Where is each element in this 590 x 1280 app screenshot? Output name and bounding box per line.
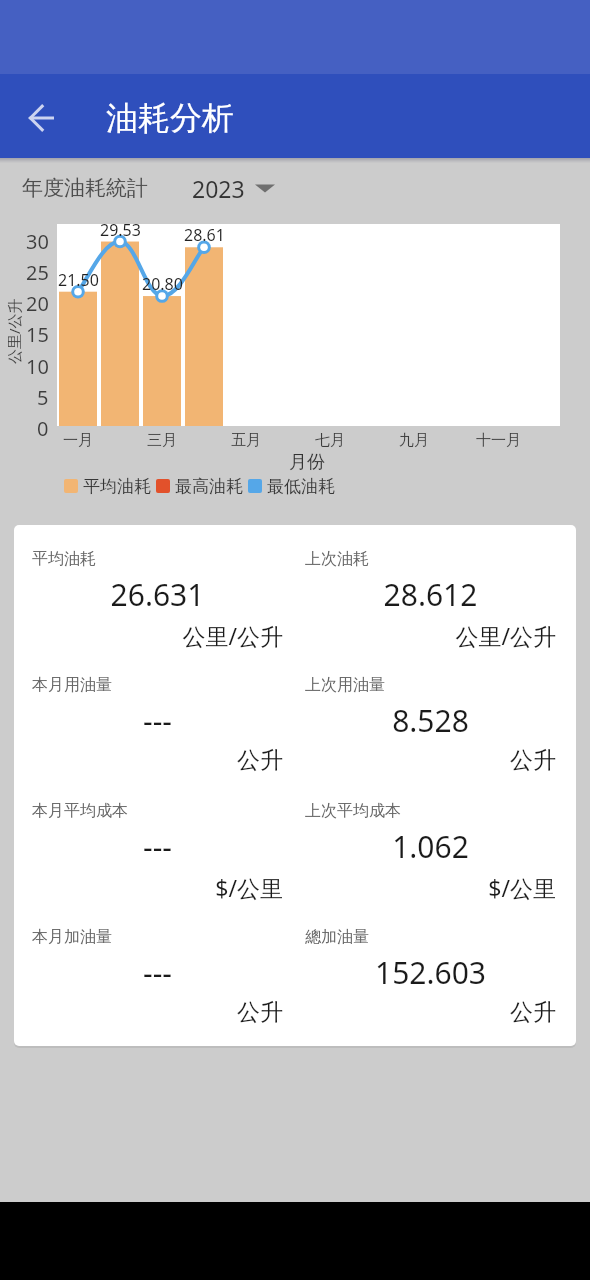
staticText: 15 bbox=[26, 321, 49, 343]
staticText: 最高油耗 bbox=[175, 476, 243, 496]
staticText: 29.53 bbox=[100, 219, 141, 239]
staticText: 五月 bbox=[231, 431, 261, 450]
staticText: 七月 bbox=[315, 431, 345, 450]
staticText: 三月 bbox=[147, 431, 177, 450]
button[interactable] bbox=[18, 92, 66, 140]
staticText: --- bbox=[32, 826, 283, 867]
staticText: 20 bbox=[26, 290, 49, 312]
staticText: 上次用油量 bbox=[305, 675, 385, 695]
staticText: 10 bbox=[26, 353, 49, 375]
staticText: 公升 bbox=[32, 746, 283, 775]
staticText: 30 bbox=[26, 228, 49, 250]
staticText: 本月加油量 bbox=[32, 927, 112, 947]
staticText: 公升 bbox=[32, 998, 283, 1027]
staticText: 一月 bbox=[63, 431, 93, 450]
staticText: 平均油耗 bbox=[32, 549, 96, 569]
staticText: 28.612 bbox=[305, 574, 556, 615]
staticText: 28.61 bbox=[184, 224, 225, 244]
staticText: 1.062 bbox=[305, 826, 556, 867]
staticText: 最低油耗 bbox=[267, 476, 335, 496]
staticText: 總加油量 bbox=[305, 927, 369, 947]
staticText: 油耗分析 bbox=[106, 98, 234, 138]
staticText: 21.50 bbox=[58, 269, 99, 289]
staticText: 25 bbox=[26, 259, 49, 281]
staticText: 5 bbox=[37, 384, 49, 406]
staticText: 20.80 bbox=[142, 273, 183, 293]
staticText: --- bbox=[32, 952, 283, 993]
staticText: $/公里 bbox=[305, 872, 556, 903]
staticText: 2023 bbox=[192, 173, 245, 204]
staticText: 本月平均成本 bbox=[32, 801, 128, 821]
staticText: $/公里 bbox=[32, 872, 283, 903]
staticText: 月份 bbox=[289, 451, 325, 471]
staticText: 十一月 bbox=[476, 431, 521, 450]
staticText: 公里/公升 bbox=[305, 620, 556, 651]
staticText: 公升 bbox=[305, 998, 556, 1027]
staticText: 公里/公升 bbox=[32, 620, 283, 651]
staticText: 年度油耗統計 bbox=[22, 175, 148, 201]
staticText: 0 bbox=[37, 415, 49, 437]
staticText: 平均油耗 bbox=[83, 476, 151, 496]
staticText: 上次平均成本 bbox=[305, 801, 401, 821]
staticText: 152.603 bbox=[305, 952, 556, 993]
staticText: 公里/公升 bbox=[4, 298, 24, 364]
staticText: 8.528 bbox=[305, 700, 556, 741]
button[interactable]: 2023 bbox=[192, 173, 275, 204]
staticText: 26.631 bbox=[32, 574, 283, 615]
staticText: 上次油耗 bbox=[305, 549, 369, 569]
staticText: 公升 bbox=[305, 746, 556, 775]
staticText: 九月 bbox=[399, 431, 429, 450]
staticText: 本月用油量 bbox=[32, 675, 112, 695]
staticText: --- bbox=[32, 700, 283, 741]
